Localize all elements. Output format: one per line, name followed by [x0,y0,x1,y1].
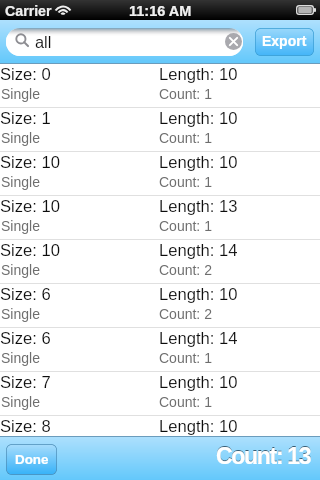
staticText: Length: 10 [159,373,238,392]
staticText: Length: 14 [159,241,238,260]
staticText: Length: 10 [159,65,238,84]
staticText: Count: 1 [159,350,212,366]
button[interactable]: Size: 10 [0,196,320,240]
staticText: Size: 10 [0,153,60,172]
staticText: Count: 1 [159,394,212,410]
staticText: Size: 10 [0,197,60,216]
staticText: Count: 1 [159,218,212,234]
staticText: Single [1,130,40,146]
staticText: Count: 1 [159,174,212,190]
button[interactable]: Size: 7 [0,372,320,416]
staticText: Length: 10 [159,417,238,436]
staticText: Done [15,452,49,467]
staticText: Single [1,262,40,278]
staticText: Count: 13 [216,443,311,469]
button[interactable]: Size: 1 [0,108,320,152]
button[interactable]: Clear search [225,33,242,50]
staticText: Count: 13 [216,442,311,468]
staticText: Length: 13 [159,197,238,216]
button[interactable]: Size: 0 [0,64,320,108]
button[interactable]: Done [6,444,57,475]
button[interactable]: all [6,28,243,56]
staticText: all [35,33,52,51]
staticText: Single [1,394,40,410]
staticText: Single [1,350,40,366]
button[interactable]: Export [255,28,314,56]
staticText: 11:16 AM [129,3,192,19]
button[interactable]: Size: 8 [0,416,320,436]
staticText: Count: 2 [159,306,212,322]
button[interactable]: Size: 10 [0,240,320,284]
staticText: Carrier [5,3,52,19]
staticText: Length: 14 [159,329,238,348]
staticText: Length: 10 [159,153,238,172]
staticText: Length: 10 [159,109,238,128]
staticText: Length: 10 [159,285,238,304]
other: Battery full [296,5,316,15]
staticText: Size: 1 [0,109,51,128]
button[interactable]: Size: 6 [0,284,320,328]
staticText: Size: 8 [0,417,51,436]
staticText: Single [1,174,40,190]
staticText: Count: 1 [159,86,212,102]
staticText: Export [262,33,307,49]
staticText: Size: 6 [0,285,51,304]
other: Wi-Fi signal [54,4,72,17]
staticText: Size: 10 [0,241,60,260]
staticText: Count: 2 [159,262,212,278]
button[interactable]: Size: 6 [0,328,320,372]
staticText: Single [1,306,40,322]
staticText: Size: 0 [0,65,51,84]
button[interactable]: Size: 10 [0,152,320,196]
staticText: Size: 6 [0,329,51,348]
staticText: Size: 7 [0,373,51,392]
staticText: Single [1,86,40,102]
staticText: Count: 1 [159,130,212,146]
staticText: Single [1,218,40,234]
